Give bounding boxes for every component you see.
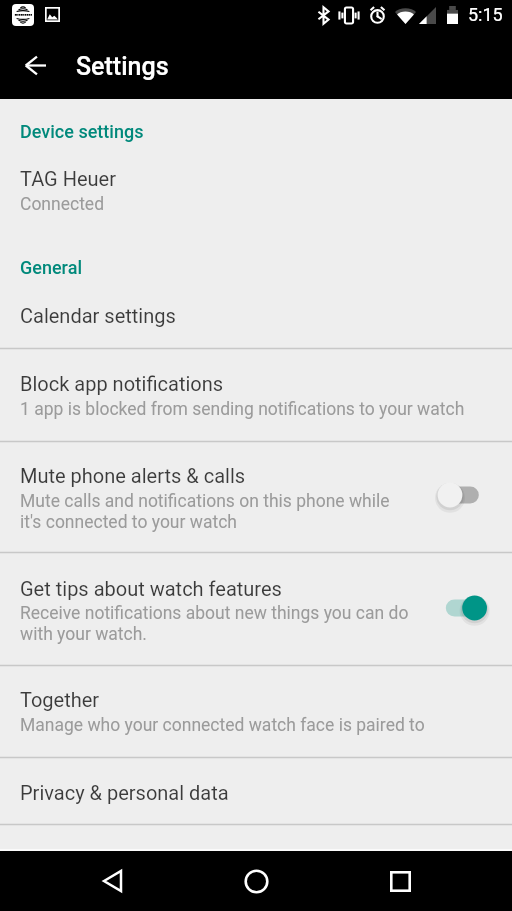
staticText: Calendar settings (20, 304, 176, 327)
button[interactable]: Home (226, 851, 286, 911)
button[interactable]: Switch on (430, 590, 492, 626)
staticText: Settings (76, 52, 169, 81)
button[interactable]: Mute phone alerts & calls (0, 442, 512, 552)
button[interactable]: Back (82, 851, 142, 911)
button[interactable]: Privacy & personal data (0, 758, 512, 824)
staticText: Block app notifications (20, 372, 224, 395)
button[interactable]: Calendar settings (0, 281, 512, 348)
staticText: Mute calls and notifications on this pho… (20, 491, 390, 533)
staticText: TAG Heuer (20, 167, 116, 190)
button[interactable]: Together (0, 666, 512, 757)
staticText: Together (20, 688, 100, 711)
button[interactable]: Switch off (430, 477, 492, 513)
staticText: 1 app is blocked from sending notificati… (20, 399, 465, 420)
staticText: 5:15 (468, 4, 503, 25)
button[interactable]: Navigate up (11, 41, 59, 89)
staticText: Receive notifications about new things y… (20, 603, 409, 645)
staticText: General (20, 257, 83, 278)
staticText: Connected (20, 194, 105, 215)
staticText: Device settings (20, 121, 144, 142)
button[interactable]: Get tips about watch features (0, 553, 512, 665)
button[interactable]: TAG Heuer (0, 145, 512, 248)
staticText: Mute phone alerts & calls (20, 464, 246, 487)
button[interactable]: Recent apps (370, 851, 430, 911)
staticText: Privacy & personal data (20, 781, 229, 804)
button[interactable]: Block app notifications (0, 349, 512, 441)
staticText: Manage who your connected watch face is … (20, 715, 425, 736)
staticText: Get tips about watch features (20, 577, 282, 600)
